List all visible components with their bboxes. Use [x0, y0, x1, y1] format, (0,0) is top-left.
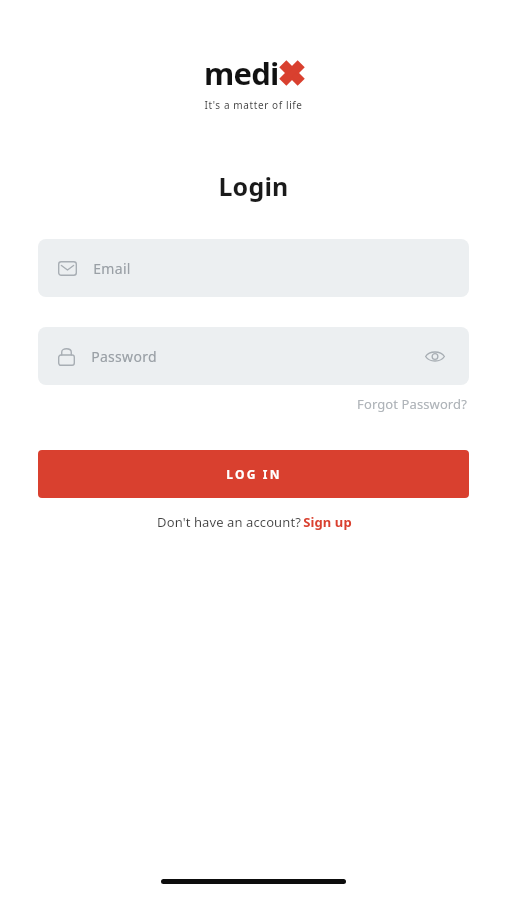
staticText: LOG IN [226, 466, 282, 482]
button[interactable]: Password [38, 327, 469, 385]
button[interactable]: Show password [421, 342, 449, 370]
staticText: It's a matter of life [204, 98, 303, 112]
staticText: Forgot Password? [357, 395, 467, 413]
button[interactable]: LOG IN [38, 450, 469, 498]
button[interactable]: Forgot Password? [355, 393, 469, 415]
staticText: Email [93, 259, 131, 278]
staticText: Sign up [303, 513, 352, 531]
button[interactable]: Sign up [303, 513, 352, 531]
staticText: Password [91, 347, 157, 366]
staticText: Don't have an account? [155, 513, 303, 531]
button[interactable]: Email [38, 239, 469, 297]
staticText: medi [204, 52, 279, 94]
staticText: Login [218, 169, 289, 203]
